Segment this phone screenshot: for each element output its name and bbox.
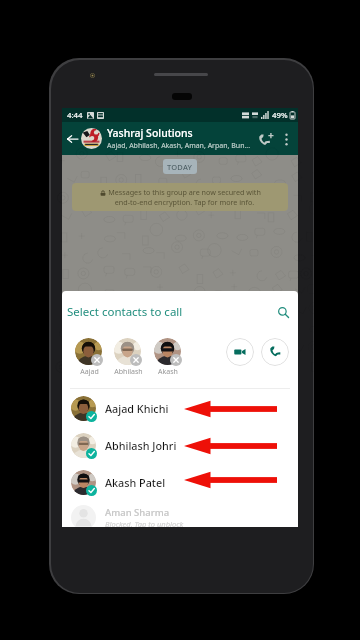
button[interactable]: Aman Sharma — [62, 503, 298, 527]
staticText: Abhilash — [114, 367, 143, 377]
button[interactable]: Abhilash Johri — [62, 427, 298, 464]
staticText: Aajad — [80, 367, 99, 377]
staticText: 4:44 — [67, 110, 83, 121]
staticText: Abhilash Johri — [105, 438, 177, 453]
staticText: Aajad Khichi — [105, 401, 169, 416]
button[interactable]: Voice call — [261, 338, 289, 366]
staticText: 49% — [272, 110, 288, 121]
button[interactable]: Akash Patel — [62, 464, 298, 501]
button[interactable]: Add participant call — [255, 126, 279, 152]
staticText: Select contacts to call — [67, 304, 275, 320]
button[interactable]: More options — [280, 126, 293, 152]
button[interactable]: Aajad — [71, 338, 107, 377]
staticText: Yashraj Solutions — [107, 126, 193, 140]
staticText: Blocked. Tap to unblock — [105, 519, 184, 527]
button[interactable]: Aajad Khichi — [62, 390, 298, 427]
staticText: Messages to this group are now secured w… — [108, 187, 261, 207]
button[interactable]: Messages to this group are now secured w… — [72, 183, 288, 211]
staticText: Aman Sharma — [105, 506, 170, 519]
button[interactable]: Video call — [226, 338, 254, 366]
button[interactable]: Abhilash — [110, 338, 146, 377]
button[interactable]: Search — [275, 304, 291, 320]
button[interactable]: Back — [64, 127, 80, 151]
staticText: Akash — [158, 367, 178, 377]
staticText: Akash Patel — [105, 475, 166, 490]
button[interactable]: Akash — [150, 338, 186, 377]
staticText: Aajad, Abhilash, Akash, Aman, Arpan, Bun… — [107, 141, 251, 151]
staticText: TODAY — [167, 162, 193, 172]
